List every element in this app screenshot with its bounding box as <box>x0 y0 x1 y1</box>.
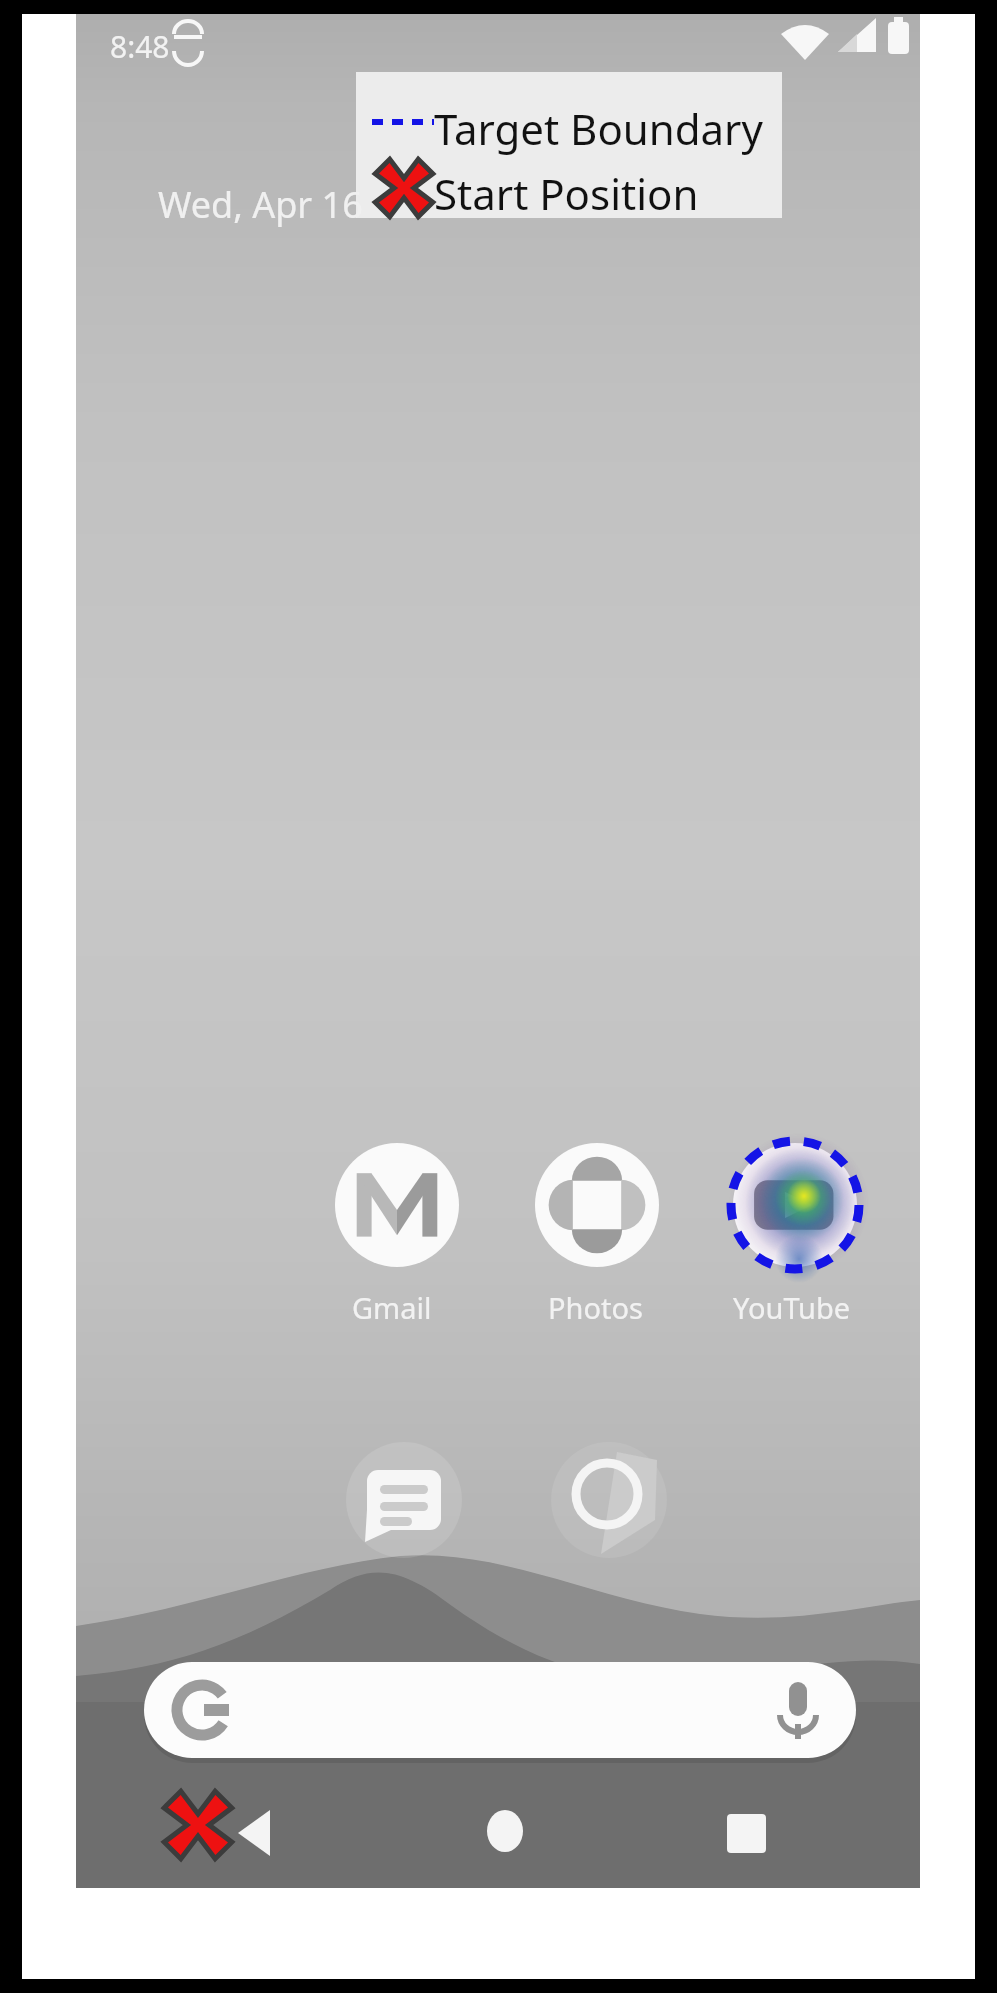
button[interactable]: Messages <box>346 1442 462 1558</box>
button[interactable]: Date Wed, Apr 16 <box>150 172 420 230</box>
button[interactable]: Home <box>440 1790 570 1874</box>
button[interactable]: Recent apps <box>680 1790 810 1874</box>
button[interactable]: Back <box>190 1790 320 1874</box>
staticText: Wed, Apr 16 <box>158 180 363 229</box>
staticText: Gmail <box>352 1288 432 1327</box>
staticText: YouTube <box>733 1288 851 1327</box>
button[interactable]: Chrome <box>551 1442 667 1558</box>
button[interactable]: Gmail <box>331 1131 463 1311</box>
staticText: Start Position <box>434 165 699 222</box>
staticText: 8:48 <box>110 26 170 67</box>
staticText: Photos <box>548 1288 643 1327</box>
staticText: Target Boundary <box>434 100 763 157</box>
button[interactable]: Google Search <box>144 1662 856 1758</box>
button[interactable]: Photos <box>531 1131 663 1311</box>
button[interactable]: YouTube <box>729 1131 861 1311</box>
